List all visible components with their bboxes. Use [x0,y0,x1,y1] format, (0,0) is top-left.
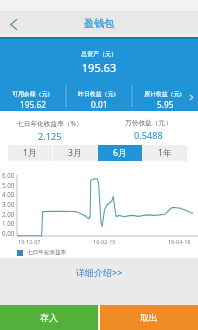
staticText: 2.00 [2,210,15,218]
staticText: 取出 [140,312,158,323]
staticText: 3月 [68,147,82,159]
staticText: 1.00 [2,219,15,227]
button[interactable]: 1年 [143,145,187,161]
staticText: 盈钱包 [84,17,114,30]
staticText: 总资产（元） [0,50,198,58]
staticText: 详细介绍>> [76,266,123,278]
staticText: 5.95 [157,99,174,110]
staticText: 可用余额（元） [12,90,54,97]
button[interactable]: 累计收益（元） [132,88,198,110]
button[interactable]: 可用余额（元） [0,88,66,110]
button[interactable]: 详细介绍>> [0,265,198,279]
staticText: 6月 [113,147,127,159]
button[interactable]: 3月 [53,145,97,161]
staticText: 5.00 [2,181,15,189]
staticText: 0.00 [2,229,15,237]
button[interactable]: 6月 [98,145,142,161]
staticText: 3.00 [2,200,15,208]
staticText: 16-02-15 [93,238,116,245]
button[interactable]: 万份收益（元） [99,111,198,140]
button[interactable]: 昨日收益（元） [66,88,132,110]
staticText: 195.62 [20,99,46,110]
staticText: 万份收益（元） [125,119,172,127]
staticText: 195.63 [0,60,198,75]
staticText: 16-04-18 [168,238,191,245]
staticText: 存入 [40,312,58,323]
staticText: 昨日收益（元） [78,90,120,97]
staticText: 2.125 [38,130,62,140]
button[interactable]: Back [2,13,24,36]
staticText: 1月 [23,147,37,159]
button[interactable]: 取出 [100,305,198,330]
staticText: 0.5488 [134,129,163,140]
staticText: 七日年化收益率（%） [17,119,83,128]
staticText: 1年 [158,147,172,159]
button[interactable]: 1月 [8,145,52,161]
button[interactable]: 存入 [0,305,98,330]
staticText: 七日年化收益率 [27,249,67,256]
button[interactable]: 七日年化收益率（%） [0,111,99,140]
staticText: 0.01 [91,99,108,110]
staticText: 15-12-07 [18,238,41,245]
staticText: 6.00 [2,171,15,179]
staticText: 4.00 [2,190,15,198]
staticText: 累计收益（元） [144,90,186,97]
